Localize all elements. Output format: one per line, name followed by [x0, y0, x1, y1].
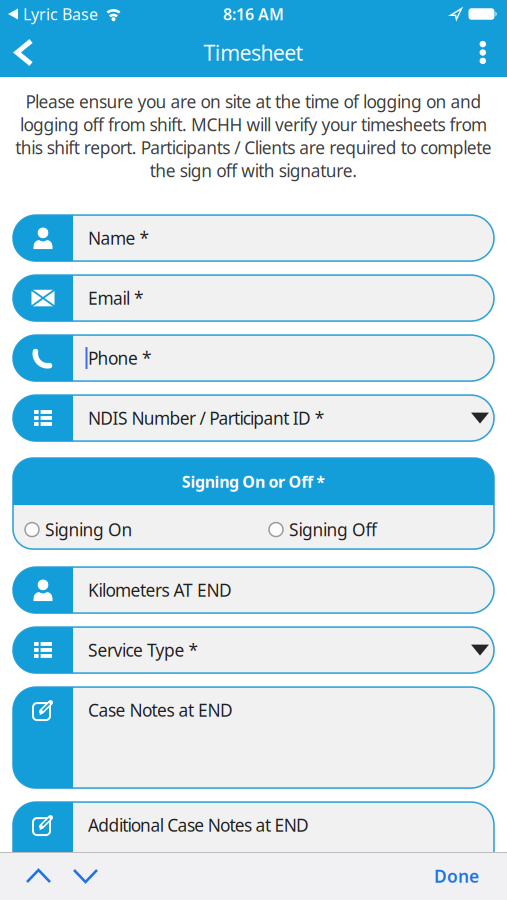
staticText: Kilometers AT END	[88, 579, 232, 602]
staticText: Done	[434, 864, 479, 887]
button[interactable]: Email *	[13, 275, 494, 321]
staticText: Phone *	[88, 347, 152, 370]
staticText: Email *	[88, 287, 144, 310]
button[interactable]: Case Notes at END	[13, 687, 494, 788]
button[interactable]: Next field	[50, 856, 97, 896]
staticText: 8:16 AM	[223, 3, 284, 25]
staticText: NDIS Number / Participant ID *	[88, 407, 325, 430]
staticText: logging off from shift. MCHH will verify…	[20, 113, 487, 136]
button[interactable]: Back	[0, 29, 31, 76]
button[interactable]: Name *	[13, 215, 494, 261]
staticText: Signing Off	[289, 518, 377, 541]
button[interactable]: Done	[434, 852, 507, 899]
staticText: Additional Case Notes at END	[88, 814, 309, 837]
staticText: Service Type *	[88, 639, 198, 662]
staticText: Case Notes at END	[88, 699, 233, 722]
staticText: Name *	[88, 227, 149, 250]
staticText: this shift report. Participants / Client…	[15, 136, 492, 159]
button[interactable]: More options	[480, 29, 507, 76]
button[interactable]: Phone *	[13, 335, 494, 381]
staticText: Lyric Base	[23, 3, 98, 25]
button[interactable]: Additional Case Notes at END	[13, 802, 494, 900]
button[interactable]: Signing Off	[269, 518, 377, 541]
staticText: Please ensure you are on site at the tim…	[25, 90, 481, 113]
staticText: Signing On or Off *	[182, 471, 325, 492]
staticText: the sign off with signature.	[150, 159, 357, 182]
staticText: Signing On	[45, 518, 132, 541]
button[interactable]: Signing On	[25, 518, 132, 541]
staticText: Timesheet	[203, 38, 304, 67]
button[interactable]: Previous field	[0, 856, 50, 896]
button[interactable]: Kilometers AT END	[13, 567, 494, 613]
button[interactable]: NDIS Number / Participant ID *	[13, 395, 494, 441]
button[interactable]: Service Type *	[13, 627, 494, 673]
